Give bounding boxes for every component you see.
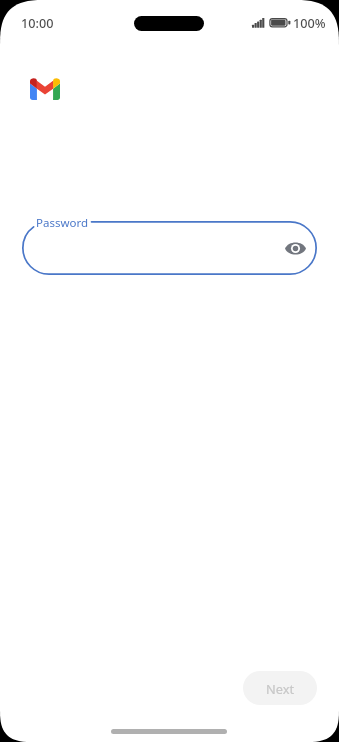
staticText: 10:00 bbox=[21, 14, 54, 31]
staticText: Next bbox=[266, 680, 295, 697]
button[interactable]: Next bbox=[243, 671, 317, 705]
staticText: Password bbox=[36, 215, 89, 231]
staticText: 100% bbox=[293, 14, 326, 31]
button[interactable]: Show password bbox=[281, 234, 309, 262]
